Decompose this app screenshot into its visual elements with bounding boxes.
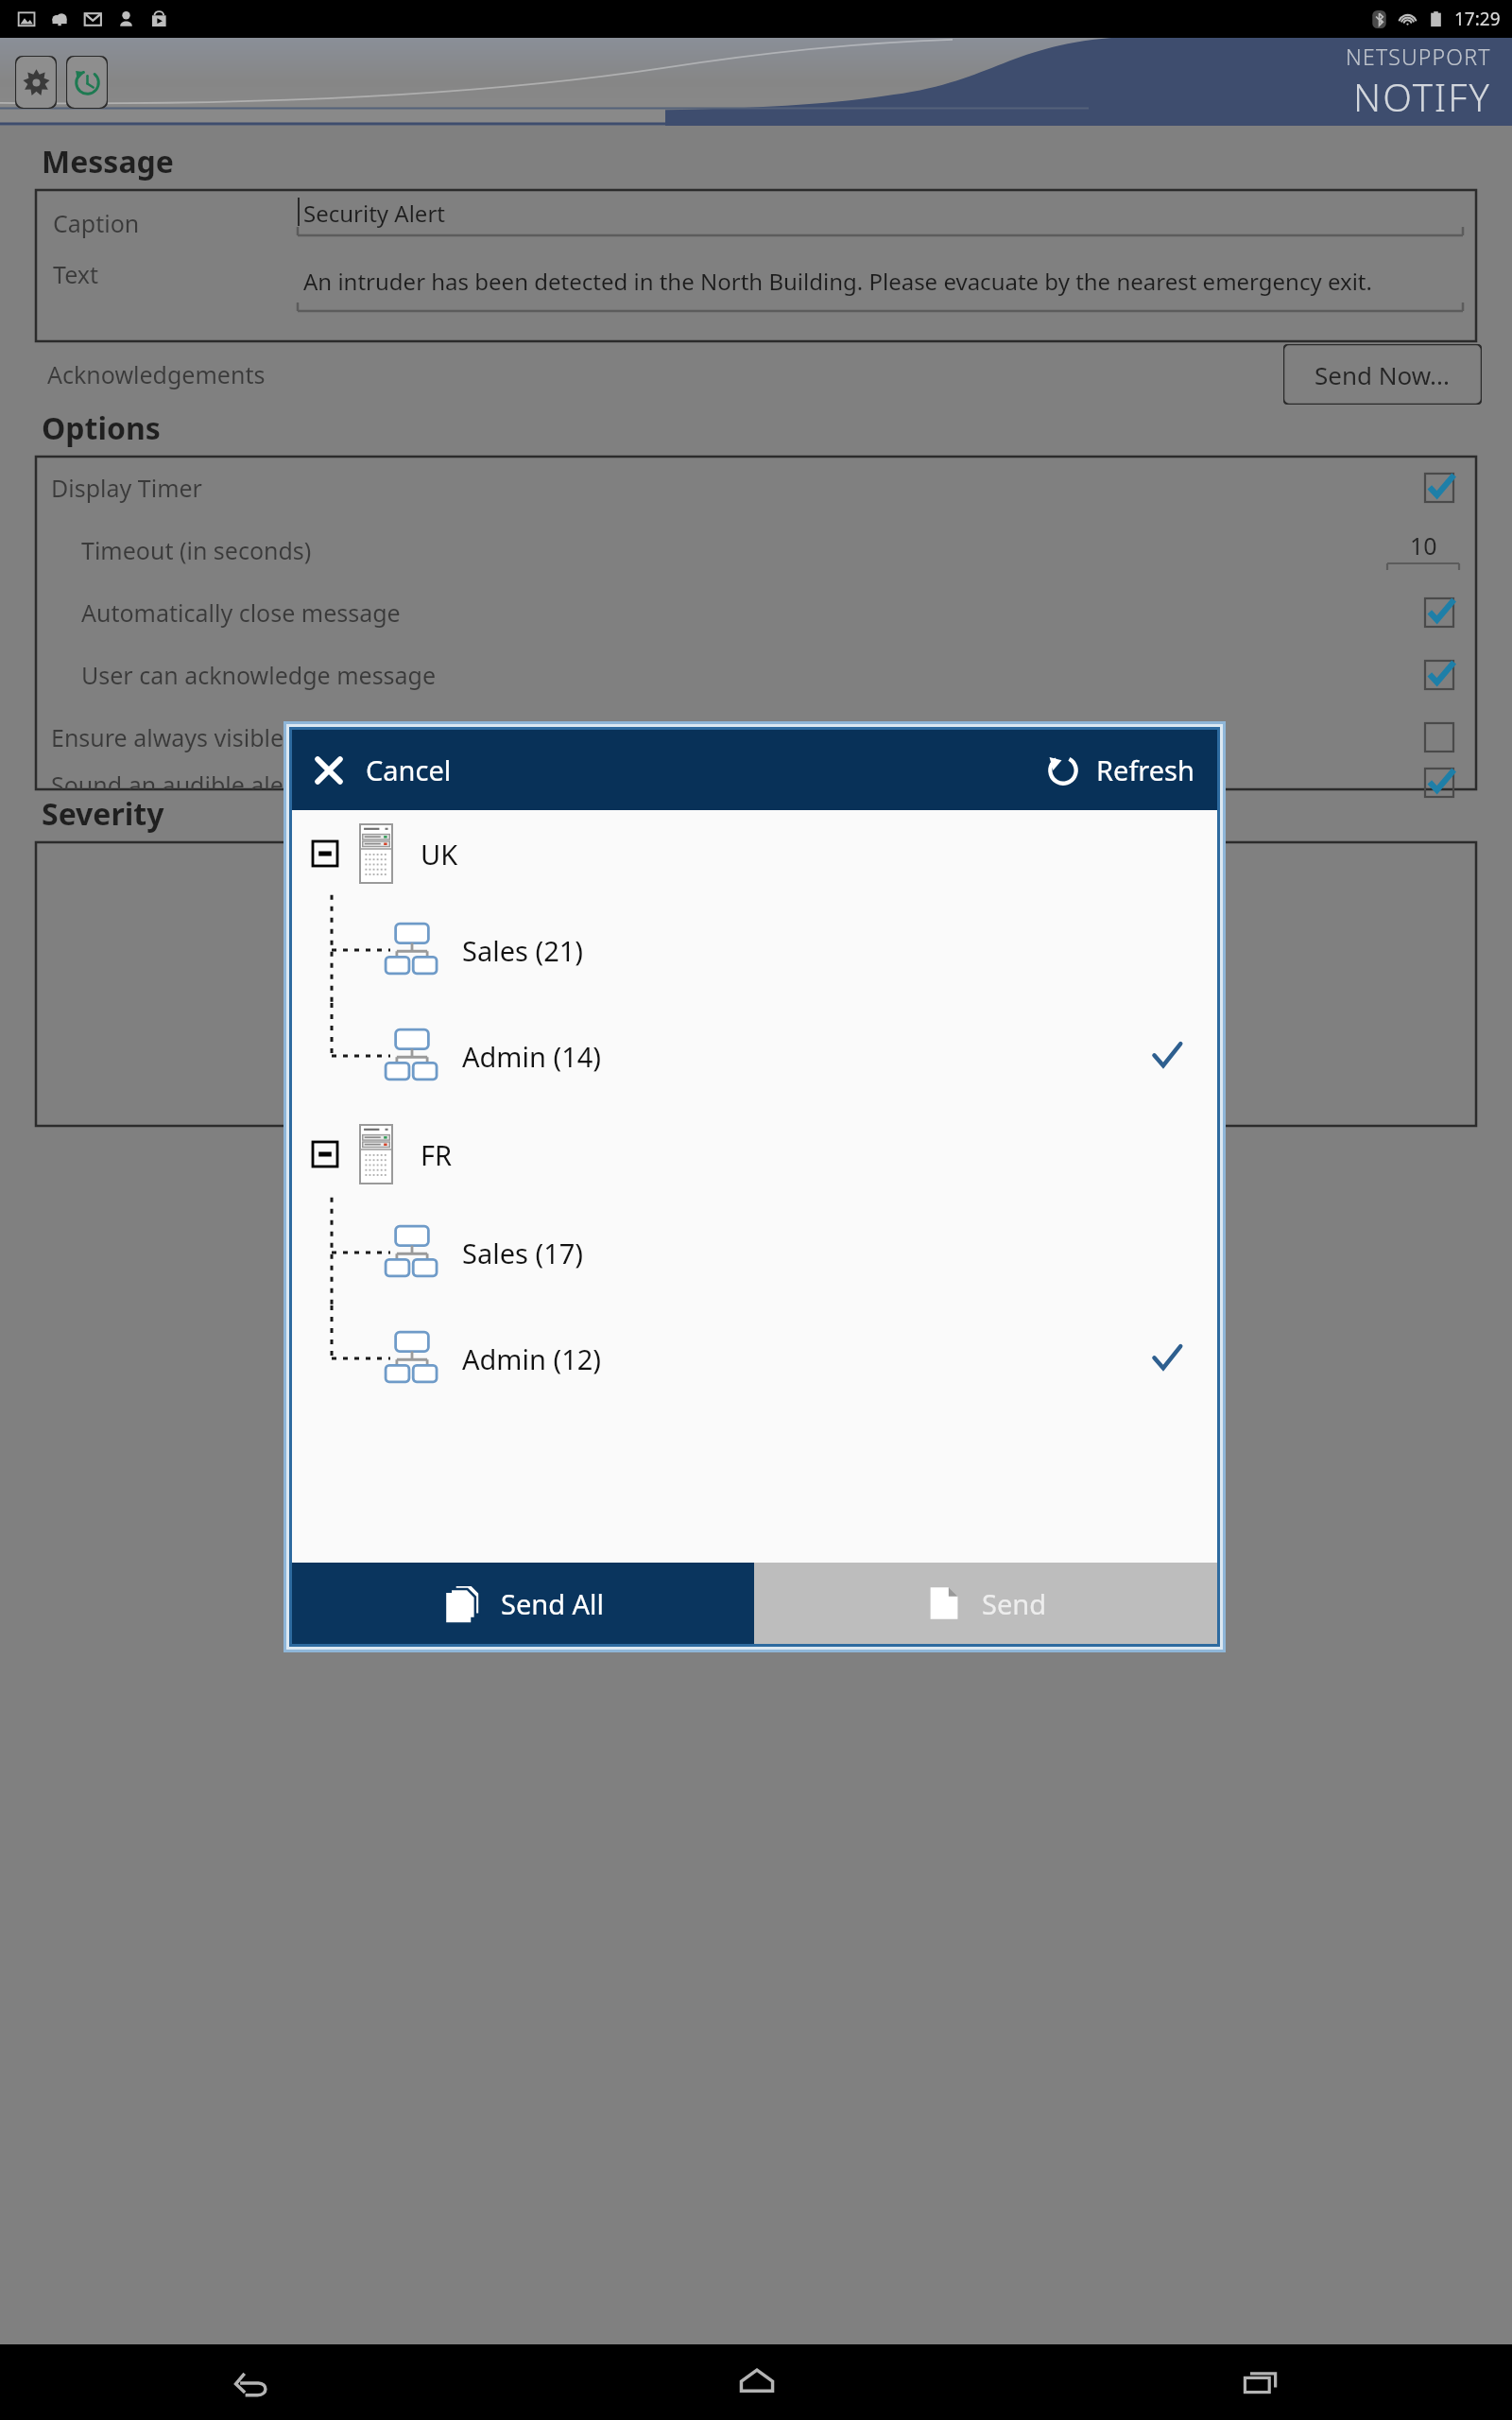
staticText: Sales (21) <box>462 932 584 969</box>
staticText: Admin (12) <box>462 1340 602 1377</box>
button[interactable]: Send All <box>292 1563 754 1644</box>
staticText: Security Alert <box>303 198 445 229</box>
staticText: NOTIFY <box>1353 71 1491 122</box>
button[interactable]: Cancel <box>292 730 472 810</box>
button[interactable]: Send Now... <box>1283 344 1482 405</box>
staticText: An intruder has been detected in the Nor… <box>303 266 1372 297</box>
staticText: Cancel <box>366 752 452 788</box>
button[interactable]: Sales (21) <box>292 897 1217 1003</box>
button[interactable]: Sound an audible alert <box>36 769 1476 789</box>
button[interactable]: Admin (12) <box>292 1305 1217 1411</box>
staticText: Timeout (in seconds) <box>81 534 312 566</box>
staticText: UK <box>421 836 458 873</box>
staticText: Send All <box>501 1585 605 1622</box>
staticText: 10 <box>1410 529 1437 562</box>
button[interactable]: Ensure always visible <box>36 706 1476 769</box>
button[interactable]: User can acknowledge message <box>36 644 1476 706</box>
staticText: Options <box>42 407 161 449</box>
staticText: User can acknowledge message <box>81 659 437 691</box>
button[interactable]: Collapse UK <box>313 841 337 866</box>
staticText: Sales (17) <box>462 1235 584 1271</box>
staticText: Text <box>53 258 99 290</box>
staticText: Acknowledgements <box>47 358 266 390</box>
staticText: Caption <box>53 207 140 239</box>
button[interactable]: Refresh <box>1024 730 1217 810</box>
button[interactable]: Home <box>505 2344 1008 2420</box>
button[interactable]: Collapse FR <box>313 1142 337 1167</box>
staticText: Send Now... <box>1314 358 1451 391</box>
staticText: Message <box>42 141 174 182</box>
staticText: FR <box>421 1136 453 1173</box>
staticText: Admin (14) <box>462 1038 602 1075</box>
button[interactable]: Admin (14) <box>292 1003 1217 1109</box>
button[interactable]: Timeout (in seconds) <box>36 519 1476 581</box>
staticText: Display Timer <box>51 472 202 504</box>
staticText: Ensure always visible <box>51 721 284 753</box>
staticText: NETSUPPORT <box>1346 42 1491 71</box>
button[interactable]: Recent apps <box>1008 2344 1512 2420</box>
button[interactable]: History <box>66 56 108 109</box>
staticText: Severity <box>42 793 164 835</box>
staticText: Send <box>982 1585 1047 1622</box>
button[interactable]: Collapse FR <box>292 1109 1217 1200</box>
button[interactable]: Back <box>0 2344 505 2420</box>
staticText: Sound an audible alert <box>51 769 302 789</box>
button[interactable]: Settings <box>15 56 57 109</box>
staticText: Refresh <box>1096 752 1194 788</box>
button[interactable]: Collapse UK <box>292 810 1217 897</box>
button[interactable]: Automatically close message <box>36 581 1476 644</box>
staticText: 17:29 <box>1454 7 1501 31</box>
staticText: Automatically close message <box>81 596 401 629</box>
button[interactable]: Sales (17) <box>292 1200 1217 1305</box>
button[interactable]: Send <box>754 1563 1217 1644</box>
button[interactable]: Display Timer <box>36 457 1476 519</box>
